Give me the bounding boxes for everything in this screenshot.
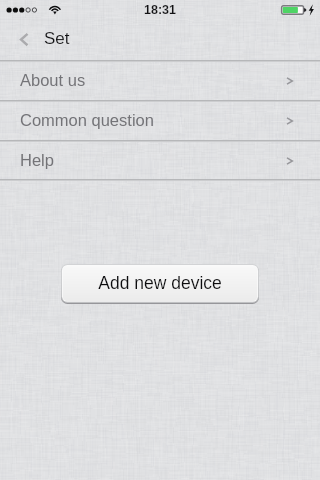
staticText: About us xyxy=(20,71,86,89)
button[interactable]: Common question xyxy=(0,102,320,140)
staticText: 18:31 xyxy=(144,3,176,17)
staticText: Add new device xyxy=(98,273,222,293)
staticText: Common question xyxy=(20,111,154,129)
button[interactable]: Help xyxy=(0,142,320,179)
button[interactable]: Back xyxy=(6,24,36,52)
button[interactable]: Add new device xyxy=(61,264,259,305)
staticText: Help xyxy=(20,151,54,169)
button[interactable]: About us xyxy=(0,62,320,100)
staticText: Set xyxy=(44,29,70,48)
